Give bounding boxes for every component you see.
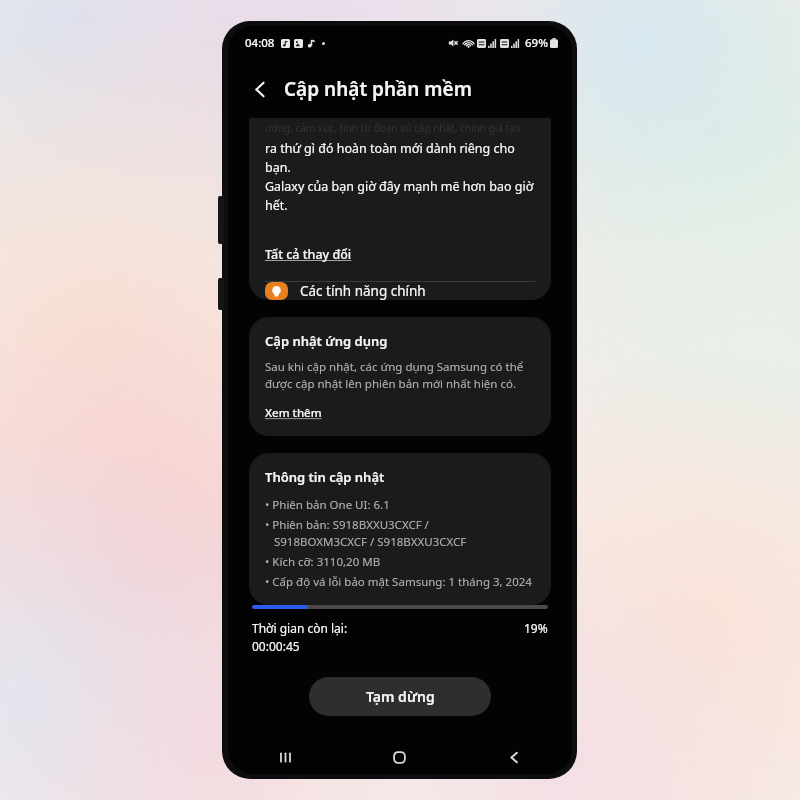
staticText: Xem thêm <box>265 405 322 421</box>
staticText: ưởng, cảm xúc, tính từ đoạn vũ cập nhật,… <box>265 121 521 135</box>
button[interactable]: Recent apps <box>228 740 342 774</box>
staticText: • Cấp độ vá lỗi bảo mật Samsung: 1 tháng… <box>265 574 532 590</box>
staticText: Thời gian còn lại: 00:00:45 <box>252 620 348 655</box>
staticText: • Kích cỡ: 3110,20 MB <box>265 554 381 570</box>
staticText: • Phiên bản One UI: 6.1 <box>265 497 390 513</box>
staticText: 69% <box>525 35 548 51</box>
button[interactable]: Xem thêm <box>265 405 322 421</box>
staticText: Cập nhật phần mềm <box>284 76 472 102</box>
button[interactable]: Back <box>457 740 572 774</box>
staticText: 04:08 <box>245 35 275 51</box>
staticText: Thông tin cập nhật <box>265 468 385 486</box>
button[interactable]: Các tính năng chính <box>265 282 535 300</box>
button[interactable]: Tạm dừng <box>309 677 491 716</box>
staticText: • Phiên bản: S918BXXU3CXCF / S918BOXM3CX… <box>265 517 467 550</box>
staticText: Sau khi cập nhật, các ứng dụng Samsung c… <box>265 359 524 392</box>
staticText: Tạm dừng <box>366 687 435 706</box>
staticText: Cập nhật ứng dụng <box>265 332 388 350</box>
staticText: ra thứ gì đó hoàn toàn mới dành riêng ch… <box>265 140 535 214</box>
button[interactable]: Back <box>242 71 278 107</box>
button[interactable]: Tất cả thay đổi <box>265 246 352 263</box>
staticText: Các tính năng chính <box>300 282 426 300</box>
staticText: Tất cả thay đổi <box>265 246 352 263</box>
button[interactable]: Home <box>342 740 457 774</box>
staticText: 19% <box>524 620 548 636</box>
